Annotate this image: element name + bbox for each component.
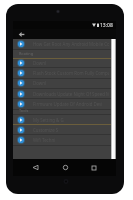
button[interactable]: Downl bbox=[13, 58, 116, 67]
button[interactable]: Flash Stock Custom Rom Fully Compatible … bbox=[13, 68, 116, 77]
button[interactable]: Downloads Update Night Of Speed Mobile D… bbox=[13, 89, 116, 98]
staticText: Tools bbox=[19, 108, 29, 113]
button[interactable]: Firmware Update Of Android Devi bbox=[13, 99, 116, 108]
staticText: How Get Root Any Android Mobile Complete… bbox=[33, 41, 109, 47]
button[interactable]: Back bbox=[27, 159, 43, 176]
button[interactable]: Home bbox=[57, 159, 73, 176]
button[interactable]: Rooting bbox=[13, 50, 116, 57]
staticText: Flash Stock Custom Rom Fully Compatible … bbox=[33, 70, 109, 76]
button[interactable]: Downl bbox=[13, 78, 116, 87]
staticText: Customize S bbox=[33, 127, 59, 133]
button[interactable]: Navigate up bbox=[13, 29, 29, 39]
staticText: Downloads Update Night Of Speed Mobile D… bbox=[33, 91, 109, 97]
staticText: Downl bbox=[33, 80, 47, 86]
staticText: My Setting & G bbox=[33, 117, 64, 123]
staticText: Rooting bbox=[19, 51, 33, 56]
staticText: Wifi Techni bbox=[33, 137, 56, 143]
button[interactable]: How Get Root Any Android Mobile Complete… bbox=[13, 39, 116, 48]
staticText: 13:08 bbox=[100, 22, 113, 29]
button[interactable]: Recent apps bbox=[86, 159, 102, 176]
button[interactable]: My Setting & G bbox=[13, 115, 116, 124]
staticText: Downl bbox=[33, 60, 47, 66]
staticText: Firmware Update Of Android Devi bbox=[33, 101, 103, 107]
button[interactable]: Tools bbox=[13, 107, 116, 114]
button[interactable]: Wifi Techni bbox=[13, 135, 116, 144]
button[interactable]: Customize S bbox=[13, 125, 116, 134]
